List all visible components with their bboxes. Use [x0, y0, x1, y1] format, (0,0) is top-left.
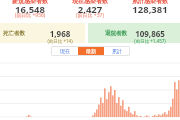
- button[interactable]: 現在: [51, 46, 78, 56]
- staticText: 退院者数: [105, 30, 127, 37]
- staticText: 1,968: [30, 28, 90, 39]
- staticText: (前日比 +14): [30, 38, 90, 44]
- button[interactable]: 死亡者数: [0, 23, 85, 43]
- staticText: 最新: [86, 48, 96, 54]
- staticText: 16,548: [0, 3, 60, 16]
- button[interactable]: 累計: [104, 46, 130, 56]
- staticText: (前日比 +956): [0, 12, 60, 19]
- staticText: 現在: [60, 48, 70, 54]
- staticText: 累計感染者数: [120, 0, 180, 5]
- staticText: (前日比 +1,457): [120, 38, 180, 44]
- staticText: 累計: [112, 48, 122, 54]
- staticText: 2,427: [60, 3, 120, 16]
- button[interactable]: 累計感染者数: [120, 0, 180, 22]
- staticText: 109,865: [120, 28, 180, 39]
- button[interactable]: 最新: [78, 46, 104, 56]
- staticText: (前日比 +37): [60, 12, 120, 19]
- staticText: 128,381: [120, 3, 180, 16]
- staticText: 新規感染者数: [0, 0, 60, 5]
- staticText: 死亡者数: [3, 30, 25, 37]
- staticText: 現在感染者数: [60, 0, 120, 5]
- button[interactable]: 現在感染者数: [60, 0, 120, 22]
- button[interactable]: 退院者数: [88, 23, 180, 43]
- button[interactable]: 新規感染者数: [0, 0, 60, 22]
